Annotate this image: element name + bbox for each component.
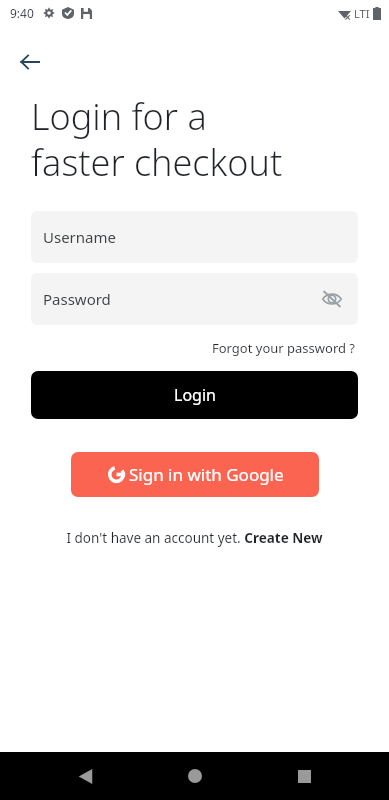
button[interactable]: Sign in with Google [71, 452, 319, 497]
button[interactable]: Forgot your password ? [210, 337, 358, 359]
staticText: 9:40 [10, 5, 34, 21]
staticText: Username [43, 227, 116, 247]
button[interactable]: I don't have an account yet. Create New [62, 527, 327, 549]
button[interactable]: Back [6, 38, 54, 86]
button[interactable]: Login [31, 371, 358, 419]
staticText: LTI [354, 6, 370, 21]
staticText: Sign in with Google [129, 463, 284, 486]
button[interactable]: Back [61, 752, 109, 800]
staticText: Login [174, 384, 216, 406]
staticText: Login for a faster checkout [31, 92, 283, 187]
button[interactable]: Recent apps [280, 752, 328, 800]
button[interactable]: Home [171, 752, 219, 800]
button[interactable]: Username [31, 211, 358, 263]
button[interactable]: Show password [318, 285, 346, 313]
staticText: Password [43, 289, 111, 309]
staticText: Forgot your password ? [212, 339, 356, 357]
staticText: I don't have an account yet. Create New [66, 529, 323, 547]
button[interactable]: Password [31, 273, 358, 325]
